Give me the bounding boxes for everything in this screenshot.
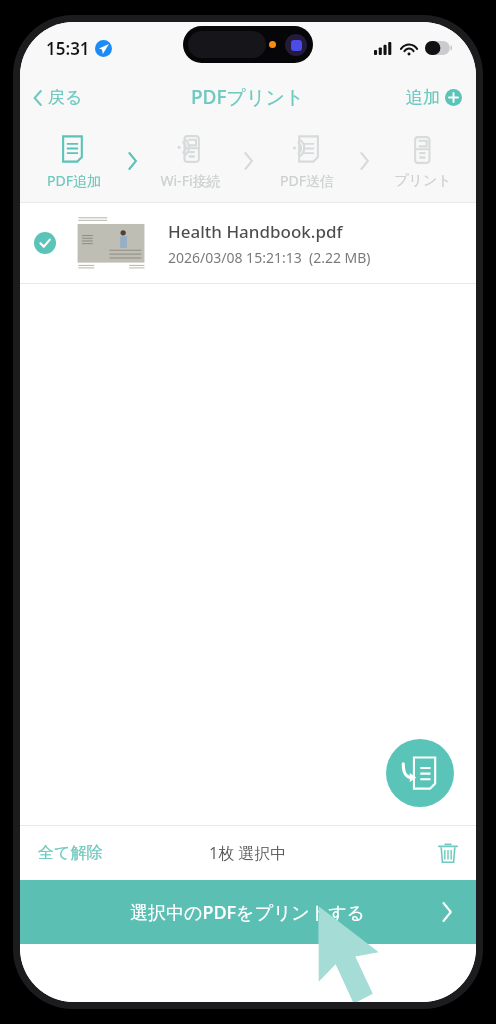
staticText: PDFプリント [191,84,305,110]
staticText: 追加 [406,87,440,108]
button[interactable]: Health Handbook.pdf [20,203,476,283]
button[interactable]: 選択中のPDFをプリントする [20,880,476,944]
button[interactable]: プリント [369,129,476,194]
button[interactable]: PDF送信 [253,128,360,194]
staticText: 1枚 選択中 [209,842,287,864]
staticText: 15:31 [46,37,90,60]
button[interactable]: 全て解除 [20,835,121,871]
staticText: Health Handbook.pdf [168,220,343,243]
staticText: 選択中のPDFをプリントする [130,900,366,925]
staticText: PDF追加 [47,171,101,190]
staticText: Wi-Fi接続 [160,171,221,190]
button[interactable]: PDFを追加 [386,739,454,807]
button[interactable]: PDF追加 [20,128,128,194]
button[interactable]: Wi-Fi接続 [137,128,244,194]
staticText: 戻る [48,87,83,108]
button[interactable]: 削除 [420,834,476,872]
staticText: プリント [394,172,452,190]
staticText: PDF送信 [280,171,334,190]
staticText: 2026/03/08 15:21:13 (2.22 MB) [168,248,371,267]
button[interactable]: 追加 [392,81,476,114]
button[interactable]: 戻る [20,81,97,114]
staticText: 全て解除 [38,843,103,863]
